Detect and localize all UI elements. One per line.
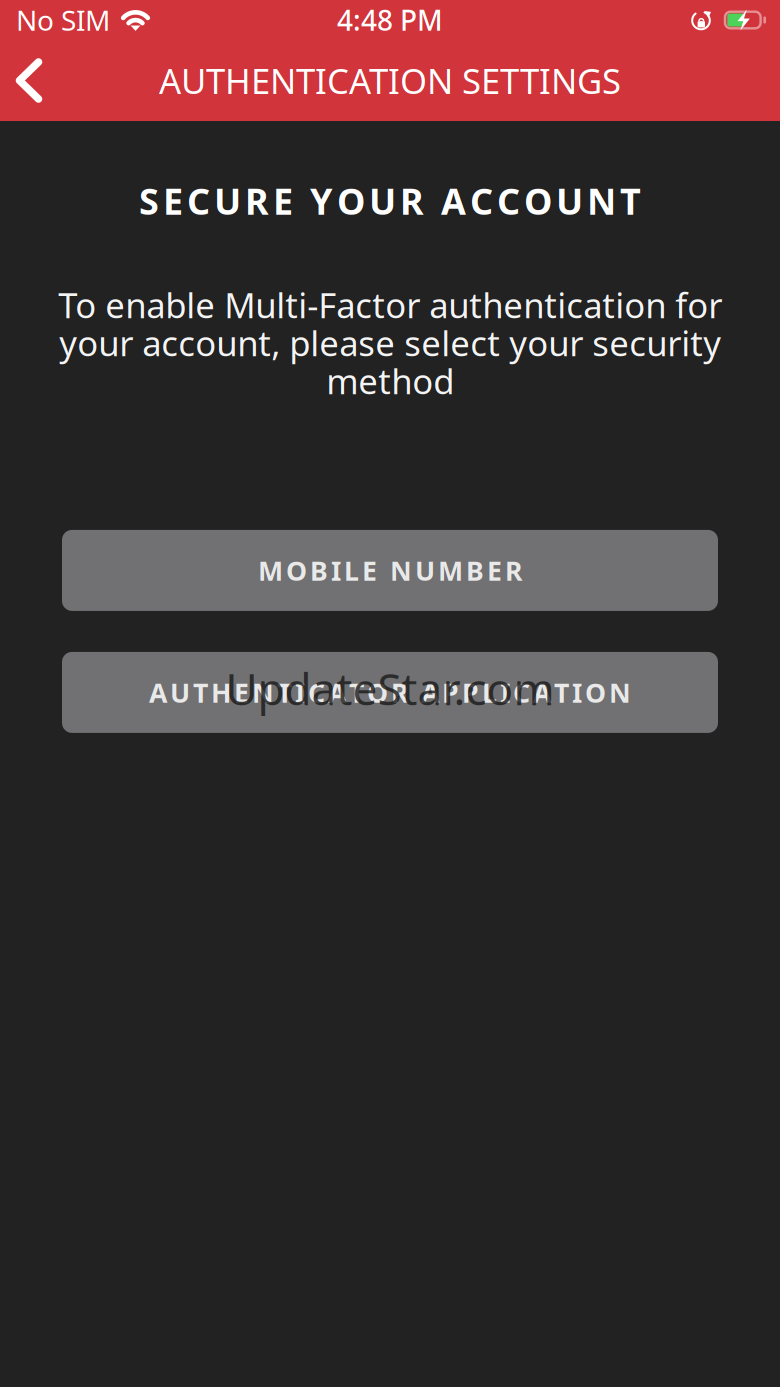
staticText: No SIM <box>16 1 110 39</box>
staticText: UpdateStar.com <box>225 659 554 717</box>
button[interactable]: A U T H E N T I C A T O R A P P L I C A … <box>62 652 718 733</box>
staticText: A U T H E N T I C A T O R A P P L I C A … <box>149 675 631 710</box>
staticText: S E C U R E Y O U R A C C O U N T <box>139 177 641 225</box>
button[interactable]: M O B I L E N U M B E R <box>62 530 718 611</box>
staticText: 4:48 PM <box>337 1 443 39</box>
staticText: AUTHENTICATION SETTINGS <box>159 57 621 103</box>
button[interactable]: Back <box>0 45 58 115</box>
staticText: To enable Multi-Factor authentication fo… <box>58 282 722 404</box>
staticText: M O B I L E N U M B E R <box>258 553 522 588</box>
